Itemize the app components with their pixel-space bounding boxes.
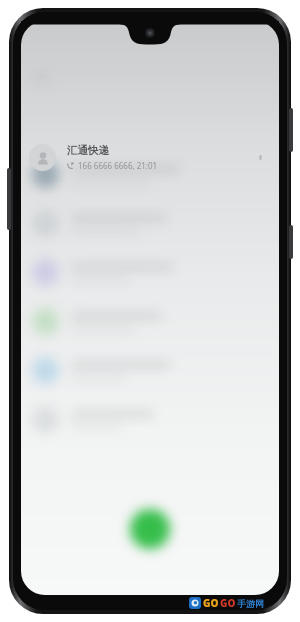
- button[interactable]: [21, 248, 279, 297]
- button[interactable]: More options: [249, 146, 271, 168]
- staticText: 汇通快递: [67, 144, 109, 157]
- button[interactable]: 汇通快递: [21, 134, 279, 180]
- staticText: GO: [203, 596, 219, 610]
- button[interactable]: [21, 297, 279, 346]
- button[interactable]: [21, 395, 279, 444]
- button[interactable]: [21, 199, 279, 248]
- other: Volume: [7, 168, 11, 230]
- staticText: 166 6666 6666, 21:01: [78, 160, 158, 171]
- staticText: 手游网: [237, 598, 264, 609]
- other: Power: [289, 108, 293, 152]
- button[interactable]: [21, 150, 279, 199]
- button[interactable]: Dial pad: [130, 509, 170, 549]
- staticText: GO: [220, 596, 236, 610]
- button[interactable]: [21, 346, 279, 395]
